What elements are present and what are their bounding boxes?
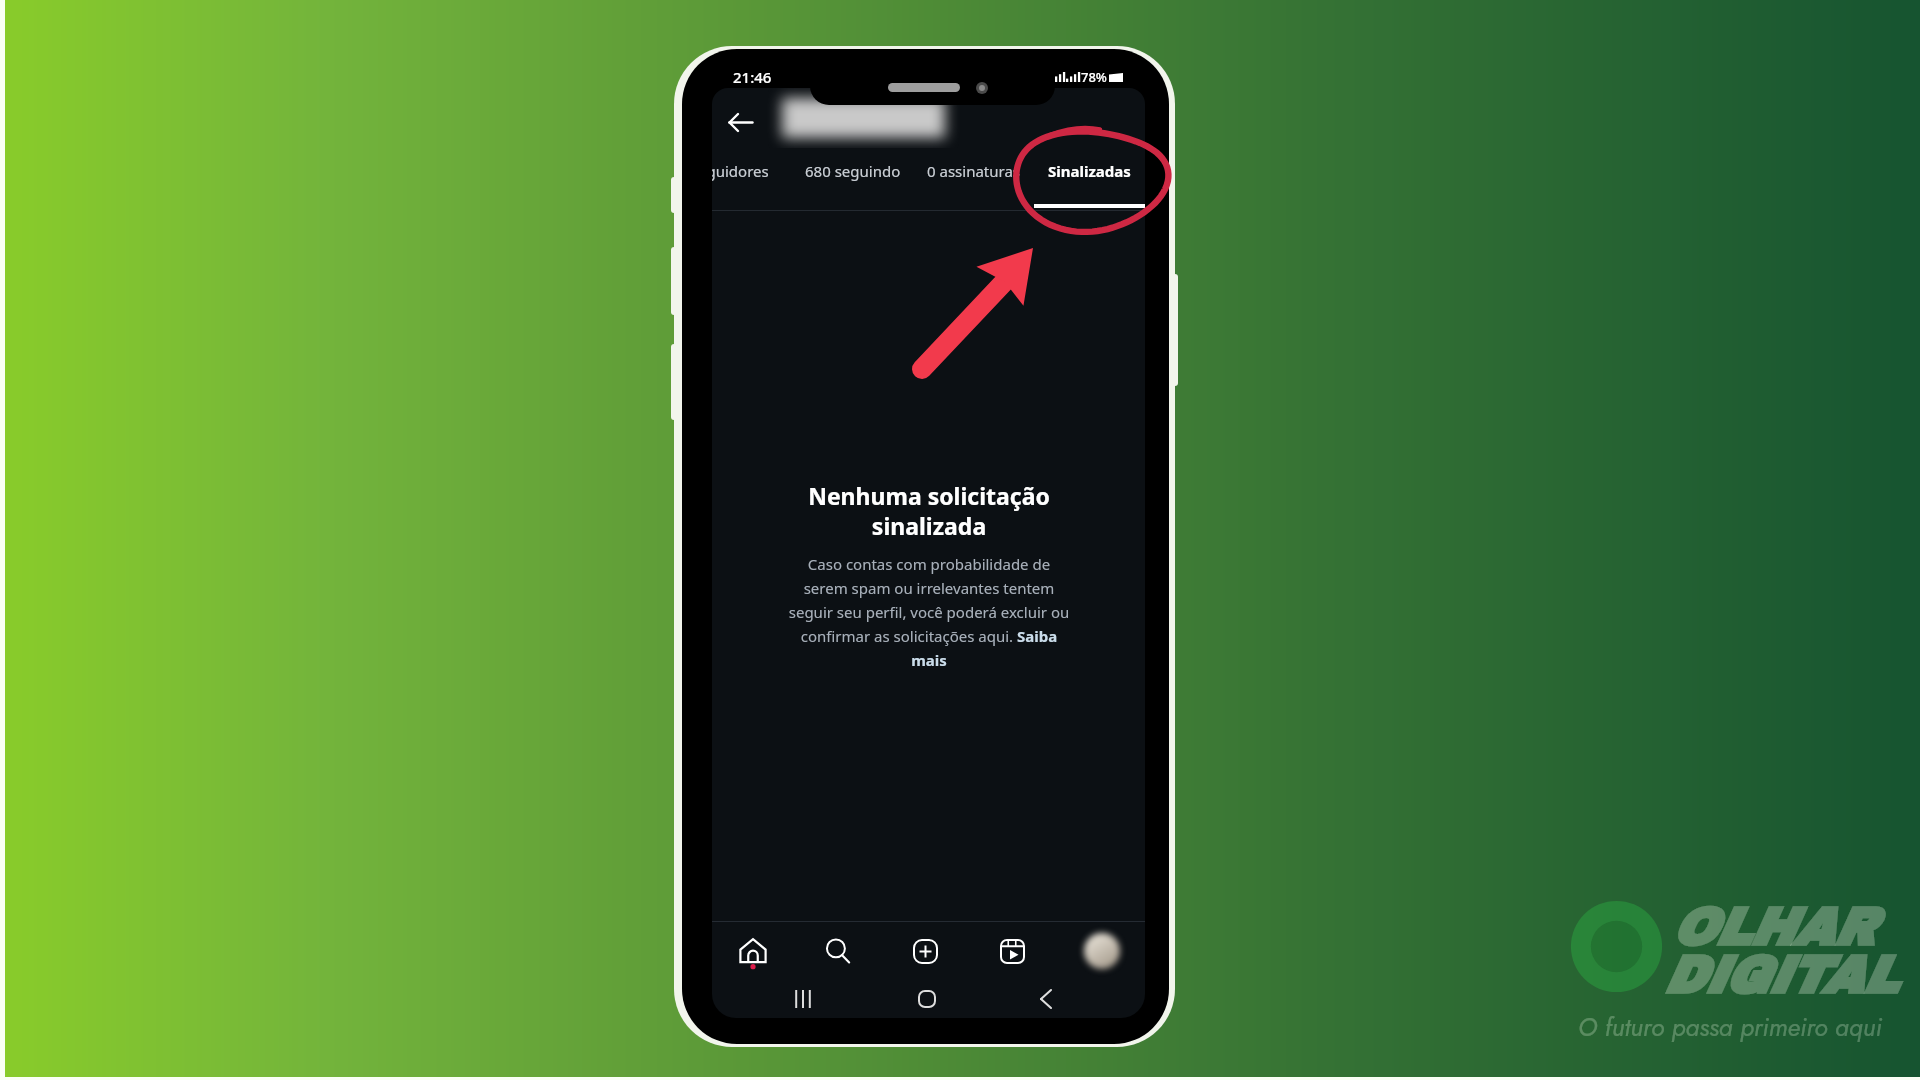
staticText: 78% xyxy=(1081,68,1107,86)
staticText: DIGITAL xyxy=(1663,947,1897,1004)
button[interactable]: Search xyxy=(812,925,864,977)
staticText: Sinalizadas xyxy=(1048,161,1131,181)
staticText: 680 seguindo xyxy=(805,161,901,181)
button[interactable]: 680 seguindo xyxy=(797,148,909,210)
staticText: Caso contas com probabilidade de serem s… xyxy=(779,554,1079,670)
staticText: 0 assinaturas xyxy=(927,161,1021,181)
button[interactable]: Reels xyxy=(986,925,1038,977)
staticText: 21:46 xyxy=(733,67,772,87)
staticText: Nenhuma solicitação sinalizada xyxy=(800,480,1058,542)
button[interactable]: Recents xyxy=(781,979,825,1018)
staticText: O futuro passa primeiro aqui xyxy=(1578,1009,1882,1045)
button[interactable]: eguidores xyxy=(712,148,781,210)
button[interactable]: 0 assinaturas xyxy=(918,148,1030,210)
button[interactable]: Sinalizadas xyxy=(1034,148,1145,210)
button[interactable]: Back xyxy=(1024,979,1068,1018)
button[interactable]: Profile xyxy=(1076,925,1128,977)
staticText: OLHAR xyxy=(1671,899,1874,956)
button[interactable]: Back xyxy=(720,102,760,142)
button[interactable]: Home xyxy=(905,979,949,1018)
staticText: eguidores xyxy=(712,161,769,181)
button[interactable]: Home xyxy=(727,925,779,977)
button[interactable]: Create xyxy=(899,925,951,977)
